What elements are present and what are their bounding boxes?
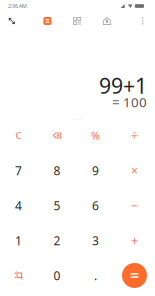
button[interactable]: Scan — [0, 258, 37, 293]
button[interactable]: Equals — [114, 258, 155, 293]
button[interactable]: Mortgage calculator — [96, 12, 118, 30]
button[interactable]: 4 — [0, 188, 37, 223]
staticText: 5 — [53, 197, 60, 213]
staticText: C — [15, 129, 21, 142]
button[interactable]: . — [77, 258, 114, 293]
button[interactable]: 8 — [37, 153, 77, 188]
staticText: 99+1 — [99, 71, 147, 100]
staticText: 2:36 AM — [8, 2, 27, 10]
staticText: 9 — [92, 162, 99, 178]
staticText: 8 — [53, 162, 60, 178]
button[interactable]: More options — [133, 12, 153, 30]
staticText: 2 — [53, 232, 60, 248]
staticText: × — [131, 162, 138, 178]
staticText: 4 — [15, 197, 22, 213]
staticText: 3 — [92, 232, 99, 248]
button[interactable]: Unit converter — [66, 12, 88, 30]
button[interactable]: 0 — [37, 258, 77, 293]
button[interactable]: + — [114, 223, 155, 258]
button[interactable]: 5 — [37, 188, 77, 223]
staticText: ÷ — [131, 127, 138, 143]
button[interactable]: Delete — [37, 118, 77, 153]
button[interactable]: ÷ — [114, 118, 155, 153]
button[interactable]: Calculator — [36, 12, 58, 30]
staticText: 1 — [15, 232, 22, 248]
staticText: − — [131, 197, 138, 213]
staticText: = 100 — [112, 93, 147, 111]
button[interactable]: 6 — [77, 188, 114, 223]
button[interactable]: 9 — [77, 153, 114, 188]
button[interactable]: Collapse — [1, 12, 23, 30]
button[interactable]: % — [77, 118, 114, 153]
button[interactable]: C — [0, 118, 37, 153]
button[interactable]: 3 — [77, 223, 114, 258]
button[interactable]: × — [114, 153, 155, 188]
staticText: 6 — [92, 197, 99, 213]
staticText: + — [131, 232, 138, 248]
button[interactable]: − — [114, 188, 155, 223]
button[interactable]: 7 — [0, 153, 37, 188]
staticText: . — [94, 267, 97, 283]
staticText: 0 — [53, 267, 60, 283]
staticText: 7 — [15, 162, 22, 178]
staticText: % — [91, 128, 100, 143]
button[interactable]: 2 — [37, 223, 77, 258]
button[interactable]: 1 — [0, 223, 37, 258]
